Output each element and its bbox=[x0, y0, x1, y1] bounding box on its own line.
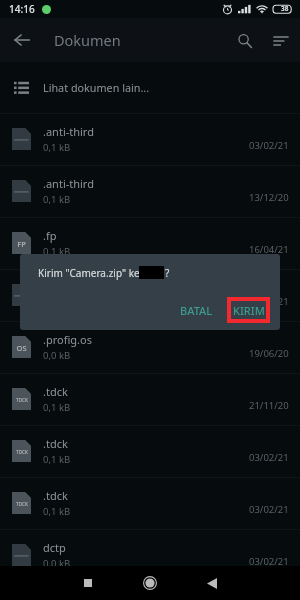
button[interactable]: Back bbox=[200, 571, 224, 595]
staticText: Kirim "Camera.zip" ke bbox=[38, 266, 140, 280]
button[interactable]: Lihat dokumen lain... bbox=[0, 62, 300, 113]
staticText: 0,1 kB bbox=[43, 401, 71, 414]
button[interactable]: FP bbox=[0, 217, 300, 269]
button[interactable]: OS bbox=[0, 321, 300, 373]
button[interactable]: Sort bbox=[266, 26, 295, 55]
staticText: .tdck bbox=[43, 436, 68, 451]
staticText: .tdck bbox=[43, 384, 68, 399]
staticText: 03/02/21 bbox=[249, 139, 289, 152]
staticText: OS bbox=[16, 343, 27, 353]
staticText: 16/04/21 bbox=[249, 243, 289, 256]
staticText: Dokumen bbox=[54, 30, 121, 50]
staticText: 03/02/21 bbox=[249, 503, 289, 516]
staticText: 0,0 kB bbox=[43, 349, 71, 362]
staticText: 03/02/21 bbox=[249, 555, 289, 568]
staticText: 0,1 kB bbox=[43, 193, 71, 206]
staticText: ? bbox=[165, 266, 170, 280]
staticText: dctp bbox=[43, 540, 66, 555]
button[interactable]: Recents bbox=[76, 571, 100, 595]
staticText: Lihat dokumen lain... bbox=[43, 80, 150, 95]
staticText: 0,1 kB bbox=[43, 505, 71, 518]
button[interactable]: KIRIM bbox=[228, 298, 269, 322]
staticText: 0,1 kB bbox=[43, 141, 71, 154]
button[interactable]: BATAL bbox=[175, 298, 217, 323]
staticText: FP bbox=[17, 239, 26, 249]
staticText: 0,0 kB bbox=[43, 557, 71, 570]
staticText: .anti-third bbox=[43, 124, 94, 139]
staticText: 03/02/21 bbox=[249, 295, 289, 308]
button[interactable]: Back bbox=[8, 26, 36, 54]
button[interactable]: .anti-third bbox=[0, 165, 300, 217]
button[interactable]: TDCK bbox=[0, 477, 300, 529]
staticText: 14:16 bbox=[9, 2, 35, 16]
staticText: .tdck bbox=[43, 488, 68, 503]
staticText: 0,1 kB bbox=[43, 453, 71, 466]
button[interactable]: .anti-third bbox=[0, 113, 300, 165]
staticText: .fp bbox=[43, 228, 57, 243]
staticText: 19/06/20 bbox=[249, 347, 289, 360]
staticText: BATAL bbox=[180, 303, 213, 318]
staticText: .profig.os bbox=[43, 332, 92, 347]
button[interactable]: TDCK bbox=[0, 425, 300, 477]
staticText: 03/02/21 bbox=[249, 451, 289, 464]
staticText: 21/11/20 bbox=[249, 399, 289, 412]
button[interactable]: Home bbox=[137, 570, 163, 596]
button[interactable]: Search bbox=[230, 26, 259, 55]
staticText: .anti-third bbox=[43, 176, 94, 191]
staticText: 13/12/20 bbox=[249, 191, 289, 204]
staticText: 38 bbox=[281, 4, 289, 13]
staticText: KIRIM bbox=[233, 303, 265, 318]
button[interactable]: dctp bbox=[0, 529, 300, 581]
button[interactable]: TDCK bbox=[0, 373, 300, 425]
button[interactable]: .dat bbox=[0, 269, 300, 321]
staticText: 0,1 kB bbox=[43, 245, 71, 258]
staticText: TDCK bbox=[16, 501, 28, 507]
staticText: TDCK bbox=[16, 449, 28, 455]
staticText: TDCK bbox=[16, 397, 28, 403]
